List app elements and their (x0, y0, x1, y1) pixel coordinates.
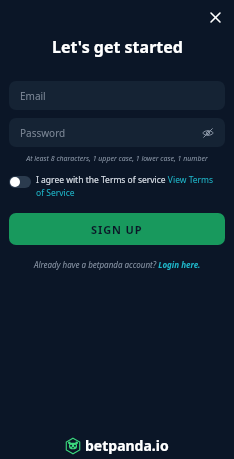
staticText: I agree with the Terms of service View T… (36, 174, 222, 199)
button[interactable]: Email (9, 81, 225, 110)
staticText: Email (20, 89, 46, 103)
staticText: At least 8 characters, 1 upper case, 1 l… (8, 154, 226, 164)
button[interactable]: I agree with the Terms of service View T… (9, 174, 222, 199)
button[interactable]: Show password (199, 124, 217, 142)
button[interactable]: Already have a betpanda account? Login h… (0, 259, 234, 270)
button[interactable]: SIGN UP (9, 213, 225, 245)
staticText: SIGN UP (91, 222, 143, 237)
staticText: Let's get started (52, 36, 183, 58)
button[interactable]: Close (204, 6, 226, 28)
button[interactable]: Password (9, 118, 225, 147)
button[interactable]: betpanda.io (65, 436, 169, 455)
staticText: Password (20, 126, 66, 140)
staticText: Already have a betpanda account? Login h… (34, 259, 201, 270)
staticText: betpanda.io (85, 436, 169, 455)
